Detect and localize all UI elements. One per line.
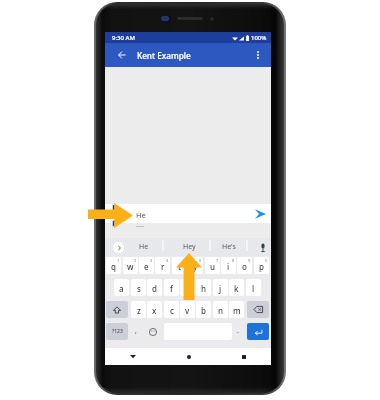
staticText: Kent Example [137,50,191,61]
staticText: 4 [166,258,169,263]
staticText: 7 [216,258,219,263]
staticText: v [185,305,190,316]
button[interactable]: j [213,279,228,296]
staticText: He's [222,242,236,252]
staticText: He [136,210,146,220]
staticText: k [234,283,239,294]
staticText: r [161,261,165,272]
button[interactable]: Back [105,348,161,365]
staticText: 100% [251,34,267,42]
button[interactable]: a [114,279,129,296]
button[interactable]: x [147,301,162,318]
staticText: a [119,283,124,294]
button[interactable]: He's [213,238,245,256]
staticText: y [193,261,198,272]
button[interactable]: backspace [247,301,269,318]
staticText: p [259,261,264,272]
staticText: Hey [183,242,196,252]
staticText: z [137,305,141,316]
staticText: 8 [232,258,235,263]
button[interactable]: f [164,279,179,296]
button[interactable]: Navigate up [110,43,134,67]
button[interactable]: Recent apps [216,348,271,365]
staticText: n [218,305,224,316]
button[interactable]: period [233,323,243,340]
staticText: 6 [199,258,202,263]
button[interactable]: Voice input [256,238,270,256]
staticText: 9:30 AM [112,34,135,42]
button[interactable]: n [213,301,228,318]
button[interactable]: Home [161,348,216,365]
staticText: q [111,261,116,272]
button[interactable]: enter [247,323,269,340]
staticText: 2 [134,258,137,263]
staticText: 9 [248,258,251,263]
staticText: 5 [183,258,186,263]
staticText: . [237,326,239,336]
staticText: x [152,305,157,316]
button[interactable]: More options [248,43,268,67]
staticText: f [170,283,173,294]
staticText: 0 [265,258,268,263]
button[interactable]: q [106,257,121,274]
button[interactable]: He [128,238,160,256]
staticText: m [233,305,241,316]
button[interactable]: He [105,204,271,223]
button[interactable]: comma [131,323,141,340]
button[interactable]: c [164,301,179,318]
button[interactable]: b [196,301,211,318]
staticText: b [201,305,206,316]
staticText: d [152,283,157,294]
staticText: c [170,305,174,316]
staticText: , [135,326,137,336]
staticText: u [210,261,216,272]
staticText: s [137,283,141,294]
staticText: o [242,261,247,272]
button[interactable]: v [180,301,195,318]
staticText: j [219,283,222,294]
button[interactable]: i [221,257,236,274]
staticText: ?123 [112,328,123,335]
button[interactable]: r [155,257,170,274]
staticText: l [252,283,255,294]
staticText: e [144,261,149,272]
button[interactable]: ?123 [106,323,128,340]
staticText: 3 [150,258,153,263]
staticText: 1 [117,258,120,263]
button[interactable]: shift [106,301,128,318]
button[interactable]: d [147,279,162,296]
staticText: He [139,242,149,252]
button[interactable]: z [131,301,146,318]
staticText: w [127,261,134,272]
button[interactable]: emoji [143,323,163,340]
button[interactable]: h [196,279,211,296]
staticText: t [178,261,182,272]
button[interactable]: p [254,257,269,274]
button[interactable]: l [246,279,261,296]
button[interactable]: g [180,279,195,296]
button[interactable]: o [237,257,252,274]
button[interactable]: e [139,257,154,274]
button[interactable]: t [172,257,187,274]
staticText: i [227,261,230,272]
button[interactable]: u [205,257,220,274]
button[interactable]: Hey [173,238,205,256]
button[interactable]: k [229,279,244,296]
button[interactable]: s [131,279,146,296]
button[interactable]: w [123,257,138,274]
button[interactable]: More suggestions [113,242,124,253]
button[interactable]: y [188,257,203,274]
button[interactable]: Send [253,207,267,221]
staticText: h [201,283,207,294]
button[interactable]: m [229,301,244,318]
